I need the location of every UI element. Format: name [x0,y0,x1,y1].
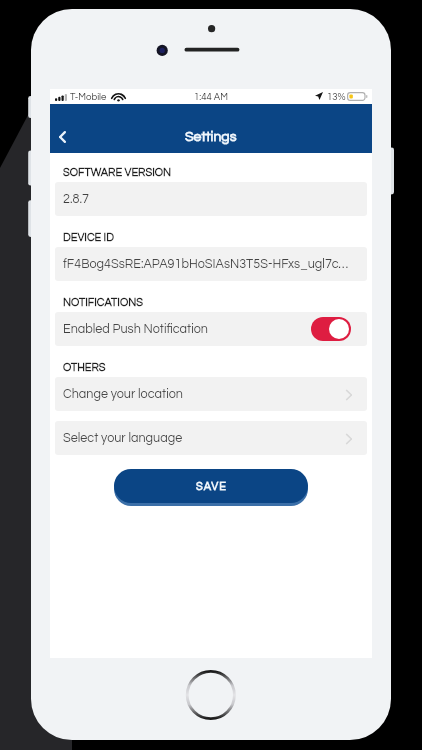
staticText: SOFTWARE VERSION [63,167,172,178]
staticText: NOTIFICATIONS [63,297,143,308]
staticText: fF4Bog4SsRE:APA91bHoSIAsN3T5S-HFxs_ugl7c… [63,258,358,271]
staticText: Change your location [63,388,183,401]
button[interactable]: Enabled Push Notification [311,317,351,341]
button[interactable]: Change your location [55,377,367,411]
staticText: Settings [185,130,237,144]
staticText: SAVE [196,481,227,492]
button[interactable]: Back [52,125,80,151]
staticText: 2.8.7 [63,193,89,206]
button[interactable]: SAVE [114,469,308,503]
staticText: 1:44 AM [194,92,228,102]
staticText: Select your language [63,432,183,445]
button[interactable]: Enabled Push Notification [55,312,367,346]
staticText: 13% [327,92,346,102]
staticText: DEVICE ID [63,232,114,243]
button[interactable]: Select your language [55,421,367,455]
staticText: OTHERS [63,362,106,373]
staticText: Enabled Push Notification [63,323,208,336]
staticText: T-Mobile [70,92,107,102]
